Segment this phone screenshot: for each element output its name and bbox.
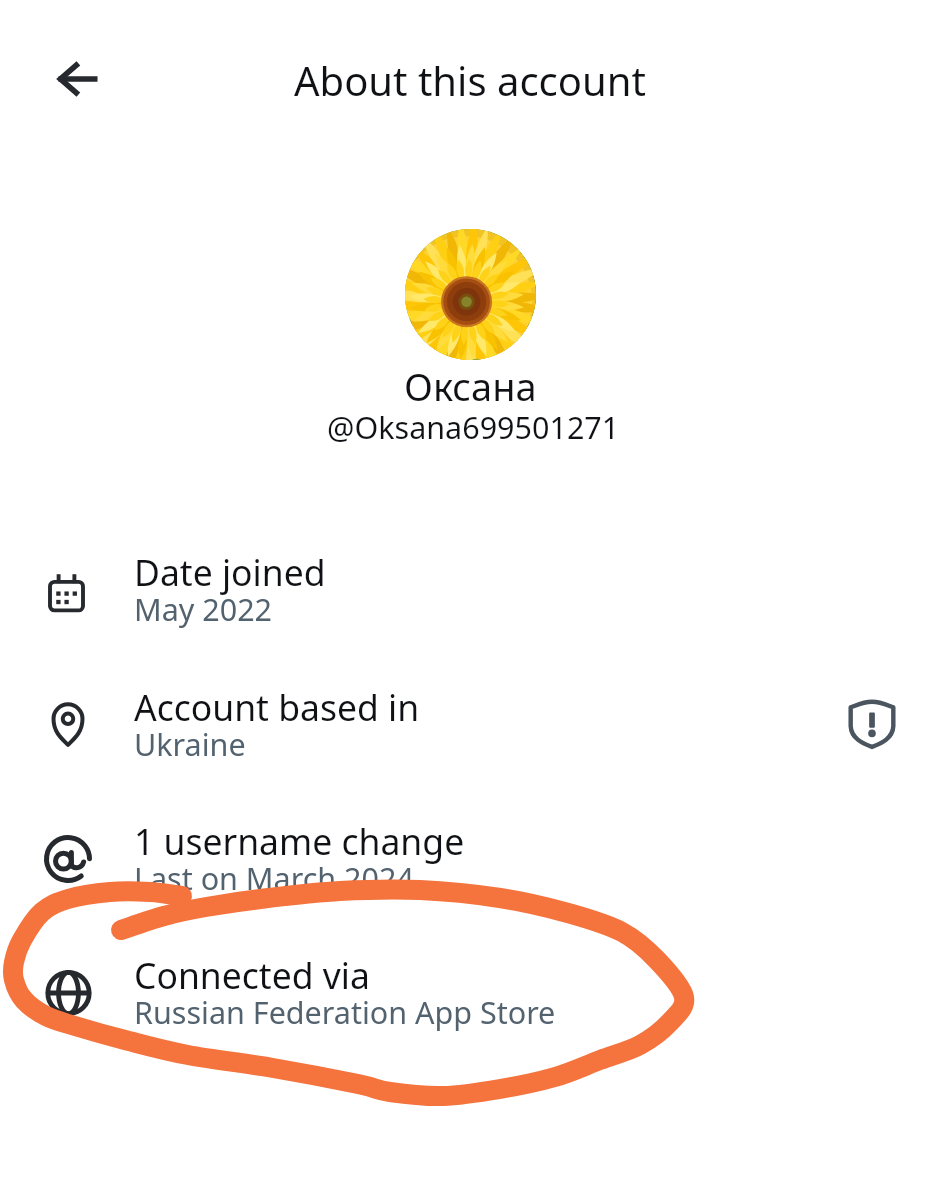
staticText: Ukraine [134,723,246,765]
staticText: 1 username change [134,817,465,865]
button[interactable]: 1 username change [0,813,940,923]
staticText: Last on March 2024 [134,857,414,899]
staticText: Russian Federation App Store [134,991,556,1033]
staticText: Connected via [134,951,370,999]
staticText: @Oksana699501271 [327,406,620,448]
staticText: Оксана [404,360,537,412]
staticText: Date joined [134,548,326,596]
button[interactable]: Connected via [0,947,940,1057]
button[interactable]: Warning [846,697,898,749]
staticText: Account based in [134,683,420,731]
button[interactable]: Account based in [0,679,940,789]
staticText: May 2022 [134,588,273,630]
button[interactable]: Back [46,47,110,111]
button[interactable]: Date joined [0,544,940,654]
staticText: About this account [294,53,646,107]
button[interactable]: Profile photo [405,229,536,360]
